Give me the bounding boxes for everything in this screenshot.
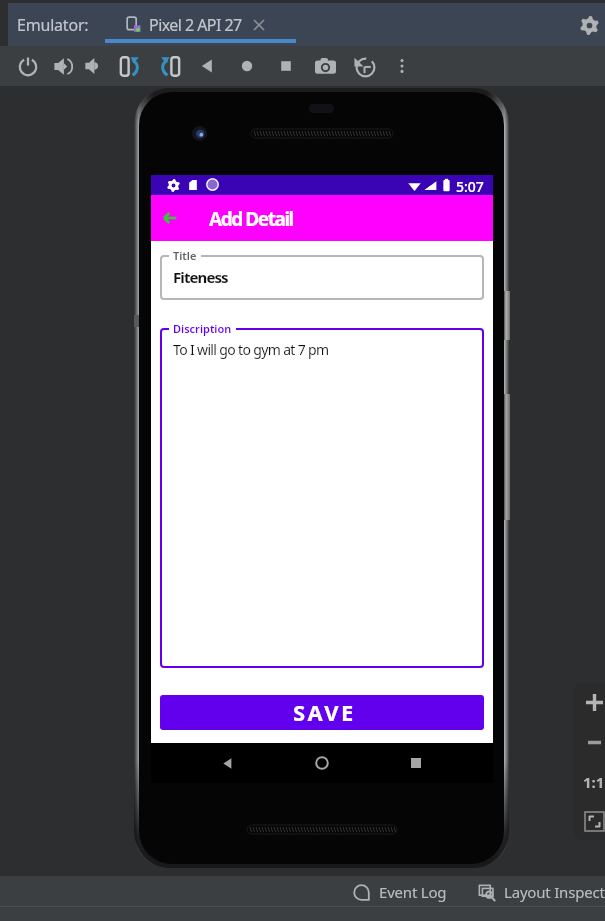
- button[interactable]: Back: [211, 747, 243, 779]
- staticText: Pixel 2 API 27: [149, 14, 242, 36]
- button[interactable]: Layout Inspect: [478, 879, 605, 905]
- staticText: Event Log: [379, 882, 447, 902]
- button[interactable]: Rotate right: [152, 48, 186, 84]
- button[interactable]: Zoom in: [574, 682, 605, 722]
- other: Close tab: [253, 19, 265, 31]
- button[interactable]: Navigate up: [156, 204, 184, 232]
- staticText: Add Detail: [209, 206, 293, 232]
- button[interactable]: Event Log: [353, 879, 447, 905]
- staticText: 1:1: [583, 772, 605, 792]
- button[interactable]: Zoom out: [574, 722, 605, 762]
- button[interactable]: Home: [230, 48, 264, 84]
- staticText: 5:07: [456, 177, 484, 196]
- button[interactable]: Screenshot: [308, 48, 342, 84]
- button[interactable]: SAVE: [160, 695, 484, 730]
- button[interactable]: Volume down: [77, 48, 111, 84]
- staticText: To I will go to gym at 7 pm: [173, 340, 329, 359]
- button[interactable]: Overview: [269, 48, 303, 84]
- button[interactable]: Actual size: [574, 762, 605, 802]
- button[interactable]: Volume up: [46, 48, 80, 84]
- button[interactable]: Rotate screen: [347, 48, 381, 84]
- staticText: SAVE: [293, 697, 356, 727]
- button[interactable]: Home: [306, 747, 338, 779]
- button[interactable]: Pixel 2 API 27: [113, 3, 273, 46]
- button[interactable]: Settings: [574, 10, 604, 40]
- button[interactable]: Rotate left: [113, 48, 147, 84]
- button[interactable]: Back: [190, 48, 224, 84]
- button[interactable]: Fit to screen: [574, 802, 605, 840]
- staticText: Layout Inspect: [504, 882, 605, 902]
- button[interactable]: Recents: [400, 747, 432, 779]
- staticText: Fiteness: [173, 267, 228, 287]
- button[interactable]: More: [385, 48, 419, 84]
- staticText: Discription: [173, 321, 232, 336]
- button[interactable]: Power: [11, 48, 45, 84]
- button[interactable]: Title: [160, 255, 484, 300]
- staticText: Emulator:: [17, 14, 89, 36]
- button[interactable]: Discription: [160, 328, 484, 668]
- staticText: Title: [173, 248, 197, 263]
